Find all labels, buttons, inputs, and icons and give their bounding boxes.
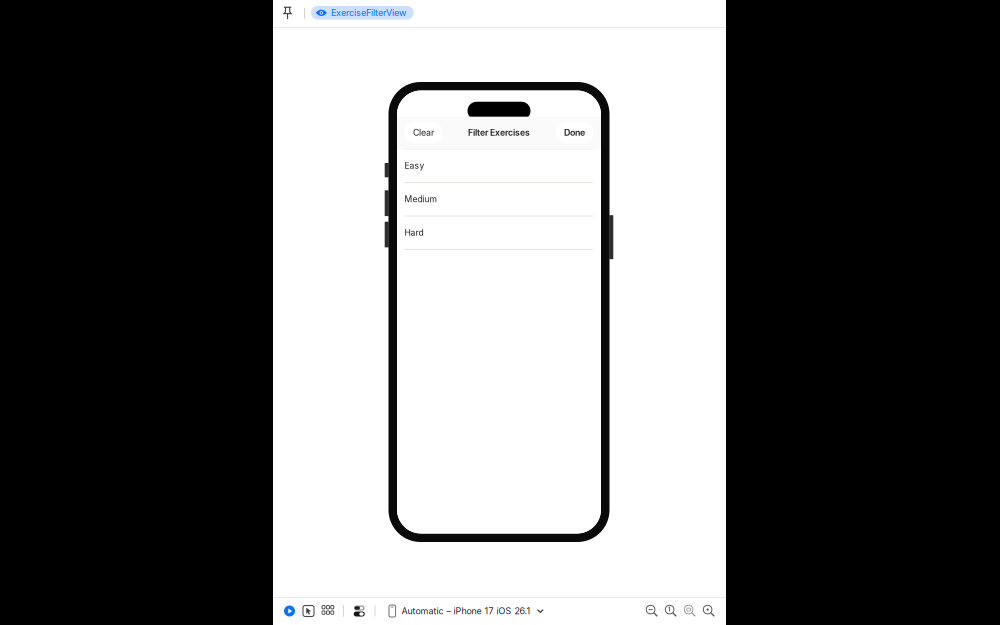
button[interactable]: Select bbox=[299, 602, 317, 620]
button[interactable]: Actual size bbox=[661, 601, 680, 620]
button[interactable]: Zoom to fit bbox=[680, 601, 699, 620]
staticText: Done bbox=[564, 127, 585, 138]
staticText: Clear bbox=[413, 127, 434, 138]
button[interactable]: Pin preview bbox=[279, 0, 297, 26]
button[interactable]: Hard bbox=[397, 216, 601, 249]
button[interactable]: Run preview bbox=[280, 602, 298, 620]
button[interactable]: ExerciseFilterView bbox=[311, 6, 414, 20]
staticText: Filter Exercises bbox=[468, 127, 530, 138]
button[interactable]: Automatic – iPhone 17 iOS 26.1 bbox=[385, 602, 548, 620]
button[interactable]: Medium bbox=[397, 183, 601, 215]
staticText: Medium bbox=[405, 194, 437, 204]
button[interactable]: Zoom in bbox=[699, 601, 718, 620]
button[interactable]: Zoom out bbox=[642, 601, 661, 620]
button[interactable]: Preview variants bbox=[318, 602, 337, 620]
button[interactable]: Done bbox=[556, 122, 593, 143]
staticText: Automatic – iPhone 17 iOS 26.1 bbox=[402, 606, 531, 616]
staticText: Easy bbox=[405, 161, 425, 171]
button[interactable]: Device settings bbox=[350, 602, 368, 620]
staticText: Hard bbox=[405, 228, 424, 238]
button[interactable]: Easy bbox=[397, 149, 601, 182]
button[interactable]: Clear bbox=[405, 122, 442, 143]
staticText: ExerciseFilterView bbox=[331, 7, 406, 18]
